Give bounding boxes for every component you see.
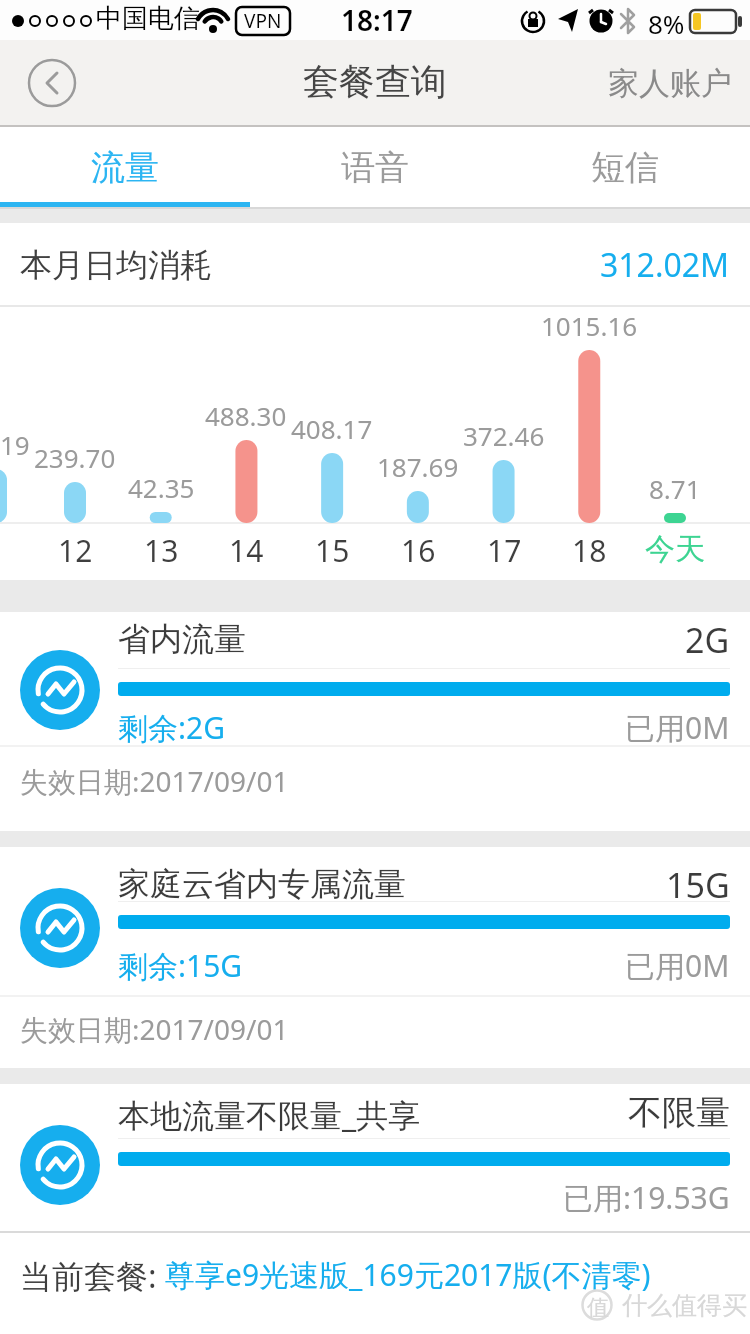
staticText: 套餐查询 xyxy=(303,59,447,104)
staticText: 当前套餐: xyxy=(20,1254,165,1298)
staticText: 中国电信 xyxy=(96,2,200,35)
button[interactable]: 本地流量不限量_共享 xyxy=(0,1084,750,1231)
staticText: 流量 xyxy=(91,146,159,189)
staticText: 本月日均消耗 xyxy=(20,245,212,285)
button[interactable]: 语音 xyxy=(250,127,500,208)
staticText: 312.02M xyxy=(600,243,730,287)
staticText: 488.30 xyxy=(205,398,287,433)
staticText: 14 xyxy=(229,530,264,571)
staticText: VPN xyxy=(244,8,282,34)
button[interactable] xyxy=(26,57,78,109)
button[interactable]: 流量 xyxy=(0,127,250,208)
staticText: 家人账户 xyxy=(608,64,732,103)
staticText: 剩余:2G xyxy=(118,707,226,748)
staticText: 本地流量不限量_共享 xyxy=(118,1093,421,1137)
staticText: 15G xyxy=(666,862,730,908)
button[interactable]: 当前套餐: xyxy=(20,1254,651,1298)
staticText: 18:17 xyxy=(341,1,413,39)
staticText: 8.71 xyxy=(649,471,701,506)
staticText: 失效日期:2017/09/01 xyxy=(20,762,289,800)
staticText: 什么值得买 xyxy=(622,1290,747,1321)
staticText: 不限量 xyxy=(628,1091,730,1134)
staticText: 尊享e9光速版_169元2017版(不清零) xyxy=(165,1254,651,1295)
button[interactable]: 家人账户 xyxy=(608,64,732,103)
staticText: 2G xyxy=(685,617,730,663)
staticText: 12 xyxy=(58,530,93,571)
staticText: 失效日期:2017/09/01 xyxy=(20,1010,289,1048)
staticText: 剩余:15G xyxy=(118,945,243,986)
staticText: 16 xyxy=(401,530,436,571)
staticText: 家庭云省内专属流量 xyxy=(118,864,406,904)
staticText: 42.35 xyxy=(128,470,195,505)
staticText: 8% xyxy=(648,6,685,41)
staticText: 今天 xyxy=(645,530,705,568)
staticText: 1015.16 xyxy=(541,308,638,343)
staticText: 13 xyxy=(144,530,179,571)
staticText: 已用0M xyxy=(625,945,730,986)
staticText: 19 xyxy=(0,427,30,462)
button[interactable]: 家庭云省内专属流量 xyxy=(0,847,750,1068)
staticText: 187.69 xyxy=(377,449,459,484)
staticText: 18 xyxy=(572,530,607,571)
staticText: 已用:19.53G xyxy=(563,1177,730,1218)
staticText: 省内流量 xyxy=(118,619,246,659)
button[interactable]: 短信 xyxy=(500,127,750,208)
staticText: 语音 xyxy=(341,146,409,189)
staticText: 408.17 xyxy=(291,411,373,446)
staticText: 已用0M xyxy=(625,707,730,748)
staticText: 15 xyxy=(315,530,350,571)
staticText: 短信 xyxy=(591,146,659,189)
button[interactable]: 省内流量 xyxy=(0,612,750,831)
staticText: 372.46 xyxy=(463,418,545,453)
staticText: 17 xyxy=(487,530,522,571)
staticText: 值 xyxy=(587,1294,609,1322)
staticText: 239.70 xyxy=(34,440,116,475)
